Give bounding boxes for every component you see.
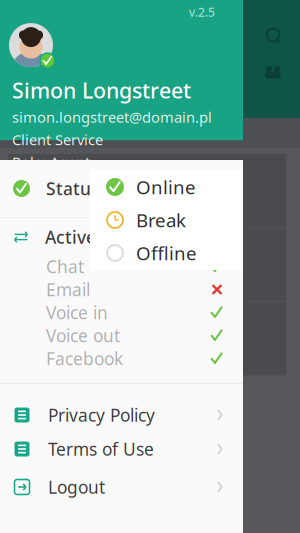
- staticText: Privacy Policy: [48, 403, 155, 426]
- staticText: ALL: [38, 123, 63, 143]
- staticText: v.2.5: [189, 4, 215, 20]
- staticText: ry.com: [12, 185, 59, 205]
- staticText: ry.com: [12, 259, 59, 279]
- button[interactable]: Chat: [0, 255, 243, 278]
- button[interactable]: Email: [0, 278, 243, 301]
- staticText: Offline: [136, 241, 197, 265]
- button[interactable]: Voice out: [0, 324, 243, 347]
- staticText: Online: [136, 175, 196, 199]
- button[interactable]: Privacy Policy: [0, 398, 243, 432]
- button[interactable]: Online: [90, 170, 243, 203]
- button[interactable]: Logout: [0, 470, 243, 504]
- staticText: Voice out: [46, 324, 120, 347]
- staticText: Active channels: [45, 225, 176, 248]
- button[interactable]: Offline: [90, 236, 243, 269]
- staticText: simon.longstreet@domain.pl: [12, 107, 212, 127]
- staticText: 23: [11, 125, 25, 141]
- staticText: Facebook: [46, 347, 123, 370]
- button[interactable]: Terms of Use: [0, 432, 243, 466]
- staticText: Chat: [46, 255, 84, 278]
- staticText: Status:: [46, 177, 104, 200]
- staticText: Simon Longstreet: [12, 76, 191, 104]
- button[interactable]: Facebook: [0, 347, 243, 370]
- staticText: Logout: [48, 475, 105, 498]
- staticText: Break: [136, 208, 186, 232]
- staticText: Role: Agent: [12, 152, 90, 172]
- button[interactable]: Voice in: [0, 301, 243, 324]
- staticText: ry.com: [12, 333, 59, 353]
- staticText: Voice in: [46, 301, 108, 324]
- button[interactable]: Status:: [0, 160, 243, 217]
- staticText: Email: [46, 278, 90, 301]
- staticText: Client Service: [12, 130, 103, 149]
- staticText: Terms of Use: [48, 437, 154, 460]
- button[interactable]: Break: [90, 203, 243, 236]
